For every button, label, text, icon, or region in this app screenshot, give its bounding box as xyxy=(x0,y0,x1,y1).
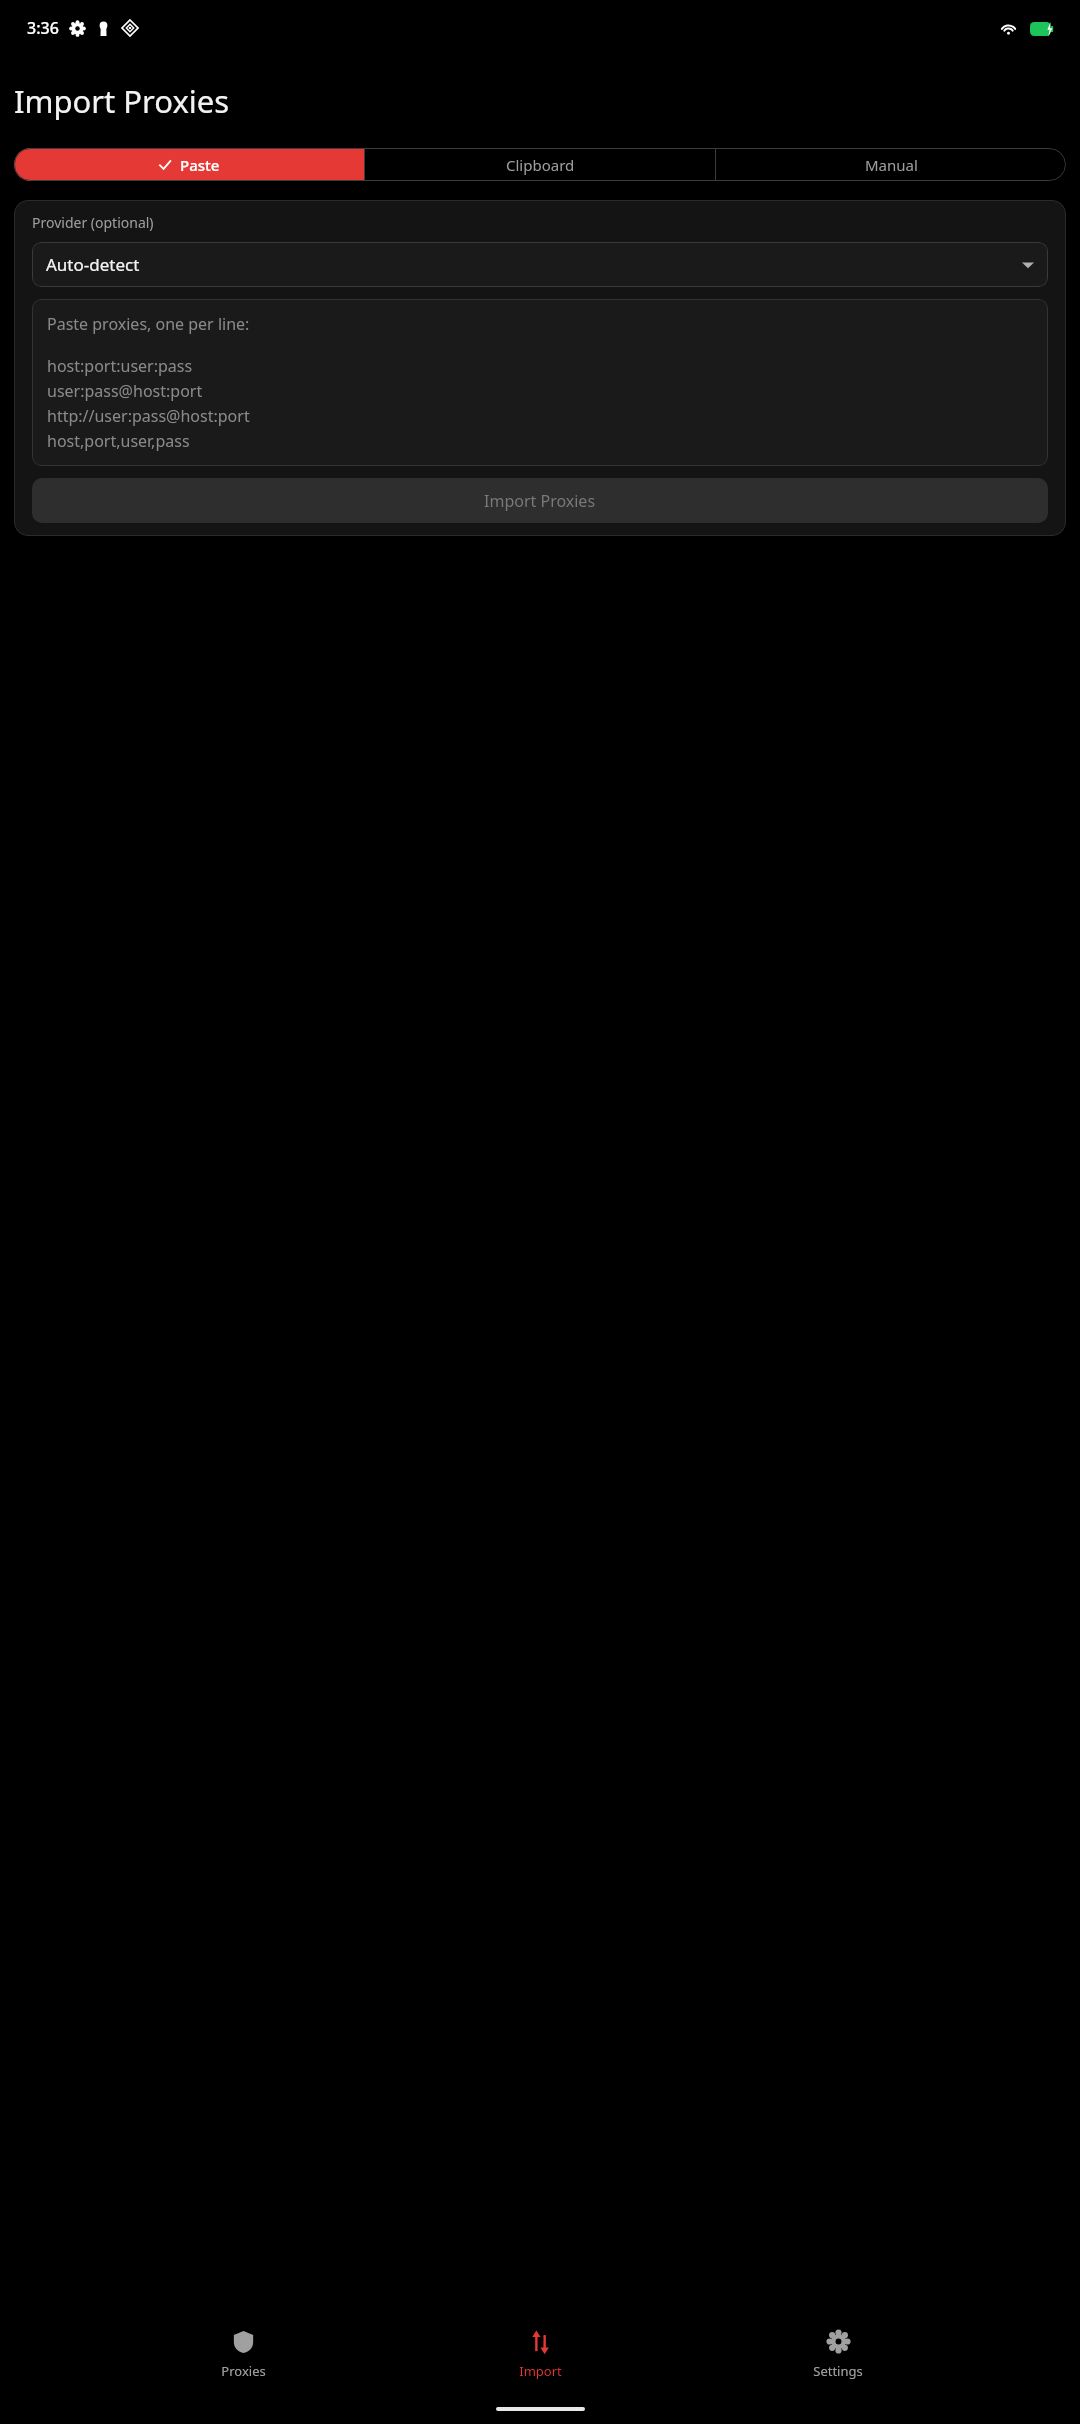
staticText: Proxies xyxy=(221,2362,266,2380)
staticText: Paste proxies, one per line: xyxy=(47,313,250,335)
staticText: user:pass@host:port xyxy=(47,380,203,402)
button[interactable]: Settings xyxy=(783,2330,893,2380)
button[interactable]: Manual xyxy=(716,148,1066,181)
staticText: Import Proxies xyxy=(484,490,596,512)
staticText: host,port,user,pass xyxy=(47,430,190,452)
staticText: http://user:pass@host:port xyxy=(47,405,250,427)
staticText: Import Proxies xyxy=(14,80,230,122)
other: Open provider dropdown xyxy=(1022,259,1034,271)
button[interactable]: Paste proxies, one per line: xyxy=(32,299,1048,466)
button[interactable]: Auto-detect xyxy=(32,242,1048,287)
button[interactable]: Paste xyxy=(14,148,364,181)
button[interactable]: Import Proxies xyxy=(32,478,1048,523)
staticText: Auto-detect xyxy=(46,253,140,276)
staticText: Manual xyxy=(865,155,918,175)
button[interactable]: Clipboard xyxy=(365,148,715,181)
button[interactable]: Proxies xyxy=(188,2330,298,2380)
staticText: Settings xyxy=(813,2362,863,2380)
staticText: 3:36 xyxy=(27,17,59,39)
staticText: host:port:user:pass xyxy=(47,355,193,377)
button[interactable]: Import xyxy=(485,2330,595,2380)
staticText: Paste xyxy=(180,155,220,175)
staticText: Provider (optional) xyxy=(32,213,154,232)
staticText: Clipboard xyxy=(506,155,575,175)
staticText: Import xyxy=(519,2362,562,2380)
